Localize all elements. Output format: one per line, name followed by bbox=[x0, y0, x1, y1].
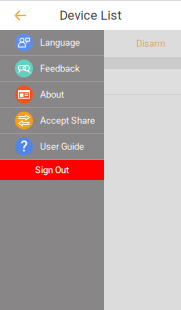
button[interactable]: Home bbox=[60, 30, 121, 57]
button[interactable]: Back bbox=[0, 1, 40, 30]
button[interactable]: Language bbox=[0, 30, 104, 55]
staticText: User Guide bbox=[40, 141, 84, 152]
staticText: Arm bbox=[22, 38, 39, 49]
staticText: Language bbox=[40, 37, 80, 48]
button[interactable]: Arm bbox=[0, 30, 60, 57]
staticText: Accept Share bbox=[40, 115, 95, 126]
staticText: ? bbox=[20, 138, 27, 155]
staticText: About bbox=[40, 89, 64, 100]
button[interactable]: About bbox=[0, 82, 104, 107]
button[interactable]: Accept Share bbox=[0, 108, 104, 133]
staticText: Home bbox=[78, 38, 103, 49]
staticText: Disarm bbox=[136, 38, 165, 49]
staticText: Device List bbox=[59, 8, 121, 23]
button[interactable]: Disarm bbox=[121, 30, 181, 57]
staticText: Feedback bbox=[40, 63, 80, 74]
button[interactable]: ? bbox=[0, 134, 104, 159]
button[interactable]: Sign Out bbox=[0, 160, 104, 180]
staticText: Sign Out bbox=[35, 164, 69, 175]
button[interactable]: Feedback bbox=[0, 56, 104, 81]
